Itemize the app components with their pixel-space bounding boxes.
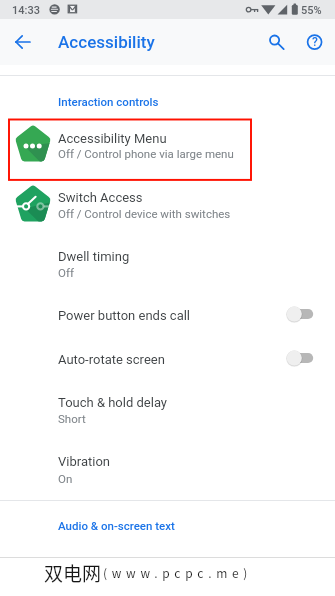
staticText: Accessibility bbox=[58, 32, 155, 52]
staticText: Off / Control device with switches bbox=[58, 207, 231, 220]
button[interactable]: Switch Access bbox=[0, 180, 335, 240]
staticText: (www.pcpc.me) bbox=[103, 564, 253, 581]
staticText: Power button ends call bbox=[58, 308, 191, 323]
staticText: Dwell timing bbox=[58, 249, 130, 264]
staticText: Audio & on-screen text bbox=[58, 519, 175, 532]
staticText: 双电网 bbox=[44, 559, 102, 587]
staticText: Short bbox=[58, 412, 86, 425]
staticText: On bbox=[58, 472, 73, 485]
button[interactable]: Vibration bbox=[0, 442, 335, 500]
staticText: ? bbox=[312, 35, 318, 49]
button[interactable]: Touch & hold delay bbox=[0, 384, 335, 442]
staticText: Accessibility Menu bbox=[58, 131, 167, 146]
button[interactable]: Auto-rotate screen bbox=[0, 341, 335, 384]
staticText: 55% bbox=[301, 4, 322, 17]
button[interactable]: Accessibility Menu bbox=[0, 120, 335, 180]
button[interactable]: Search bbox=[257, 22, 293, 58]
staticText: 14:33 bbox=[12, 4, 40, 17]
staticText: Vibration bbox=[58, 454, 110, 469]
staticText: Off / Control phone via large menu bbox=[58, 147, 234, 160]
staticText: Interaction controls bbox=[58, 95, 159, 108]
staticText: Switch Access bbox=[58, 190, 143, 205]
button[interactable]: Navigate up bbox=[5, 24, 41, 60]
staticText: Off bbox=[58, 266, 74, 279]
staticText: Touch & hold delay bbox=[58, 395, 168, 410]
button[interactable]: Help bbox=[297, 24, 333, 60]
staticText: Auto-rotate screen bbox=[58, 352, 165, 367]
button[interactable]: Dwell timing bbox=[0, 239, 335, 298]
button[interactable]: Power button ends call bbox=[0, 298, 335, 341]
